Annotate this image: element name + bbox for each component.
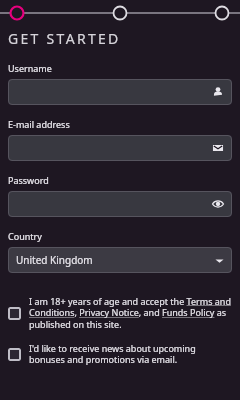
staticText: GET STARTED: [8, 29, 121, 48]
other: Open country list: [215, 256, 224, 265]
staticText: Username: [8, 62, 52, 74]
other: Receive news and promotions: [8, 348, 21, 361]
other: Accept terms and conditions: [8, 307, 21, 320]
staticText: Country: [8, 230, 42, 242]
button[interactable]: Show password: [8, 191, 232, 217]
staticText: I'd like to receive news about upcoming …: [29, 342, 232, 366]
other: Username: [212, 86, 224, 98]
staticText: I am 18+ years of age and accept the Ter…: [29, 295, 232, 331]
staticText: E-mail address: [8, 118, 70, 130]
staticText: United Kingdom: [16, 253, 93, 267]
button[interactable]: United Kingdom: [8, 247, 232, 273]
button[interactable]: Receive news and promotions: [0, 342, 240, 366]
button[interactable]: E-mail address: [8, 135, 232, 161]
other: E-mail address: [212, 142, 224, 154]
button[interactable]: Username: [8, 79, 232, 105]
other: Show password: [212, 198, 224, 210]
staticText: Password: [8, 174, 49, 186]
button[interactable]: Accept terms and conditions: [0, 295, 240, 331]
